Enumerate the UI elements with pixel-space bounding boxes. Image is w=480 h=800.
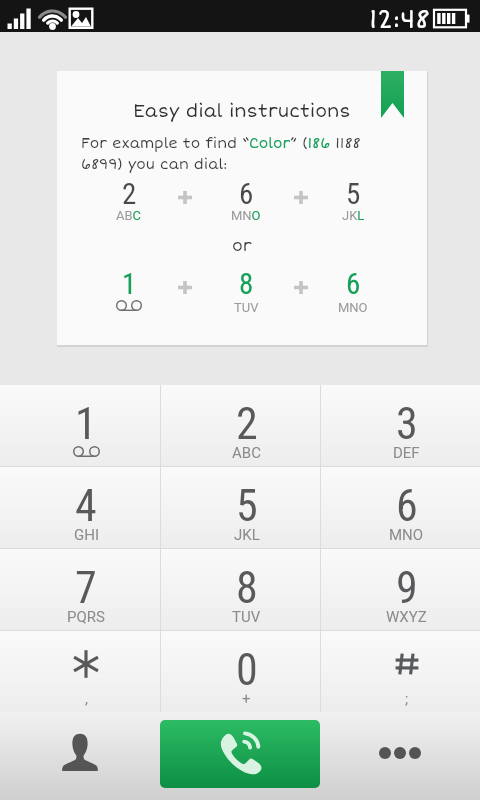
staticText: 7 (75, 562, 97, 614)
staticText: 1 (122, 267, 137, 301)
button[interactable]: More options (376, 729, 424, 777)
staticText: MNO (338, 300, 368, 315)
button[interactable]: Call (160, 720, 320, 788)
staticText: MNO (231, 208, 261, 223)
button[interactable]: 4 (0, 467, 160, 548)
staticText: JKL (234, 526, 260, 544)
button[interactable]: 9 (321, 549, 480, 630)
staticText: ABC (232, 444, 261, 462)
staticText: 8 (236, 562, 258, 614)
staticText: 5 (346, 177, 361, 211)
staticText: 6 (239, 177, 254, 211)
staticText: 2 (236, 398, 258, 450)
staticText: 0 (236, 644, 258, 696)
staticText: or (57, 236, 427, 256)
staticText: 12:48 (369, 5, 430, 36)
staticText: 2 (122, 177, 137, 211)
staticText: WXYZ (386, 608, 427, 626)
staticText: TUV (232, 608, 261, 626)
staticText: Easy dial instructions (57, 101, 427, 123)
staticText: 6 (346, 267, 361, 301)
button[interactable]: 8 (161, 549, 320, 630)
button[interactable]: 1 (0, 385, 160, 466)
staticText: ; (405, 690, 409, 708)
button[interactable]: , (0, 631, 160, 712)
button[interactable]: Contacts (56, 728, 104, 776)
staticText: 8 (239, 267, 254, 301)
staticText: JKL (342, 208, 365, 223)
button[interactable]: ; (321, 631, 480, 712)
staticText: 9 (396, 562, 418, 614)
staticText: 5 (236, 480, 258, 532)
button[interactable]: 7 (0, 549, 160, 630)
staticText: + (242, 690, 251, 708)
staticText: For example to find “Color” (186 1188 68… (81, 135, 386, 173)
staticText: 3 (396, 398, 418, 450)
staticText: 1 (75, 398, 97, 450)
staticText: 4 (75, 480, 97, 532)
button[interactable]: 5 (161, 467, 320, 548)
staticText: , (85, 690, 88, 708)
button[interactable]: 2 (161, 385, 320, 466)
staticText: MNO (389, 526, 424, 544)
button[interactable]: 0 (161, 631, 320, 712)
staticText: 6 (396, 480, 418, 532)
staticText: TUV (234, 300, 259, 315)
button[interactable]: 6 (321, 467, 480, 548)
staticText: ABC (116, 208, 142, 223)
staticText: DEF (393, 444, 420, 462)
button[interactable]: 3 (321, 385, 480, 466)
staticText: GHI (74, 526, 99, 544)
staticText: PQRS (67, 608, 105, 626)
